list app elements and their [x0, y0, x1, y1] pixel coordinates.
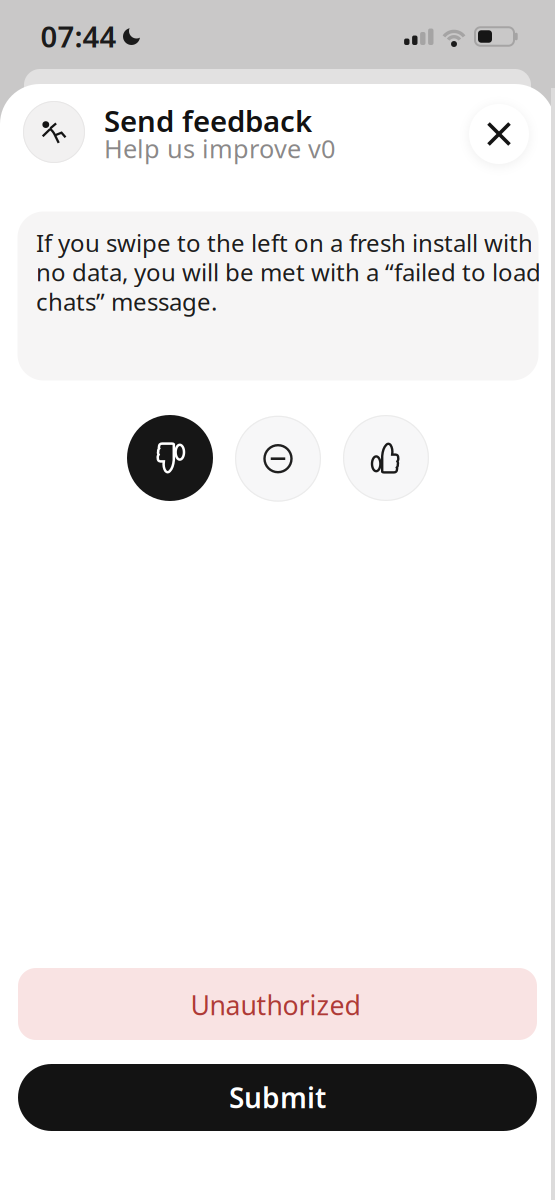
button[interactable]: Close: [469, 104, 529, 164]
button[interactable]: Thumbs up: [343, 415, 429, 501]
staticText: Send feedback: [104, 101, 312, 140]
staticText: 07:44: [40, 16, 116, 55]
staticText: Help us improve v0: [104, 132, 335, 165]
staticText: If you swipe to the left on a fresh inst…: [36, 227, 541, 317]
staticText: Unauthorized: [190, 987, 360, 1023]
button[interactable]: Thumbs down: [127, 415, 213, 501]
button[interactable]: Submit: [18, 1064, 537, 1131]
staticText: Submit: [229, 1079, 326, 1116]
button[interactable]: Neutral: [235, 416, 321, 502]
